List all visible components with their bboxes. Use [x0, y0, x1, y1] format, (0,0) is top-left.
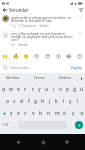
- button[interactable]: d: [18, 95, 25, 107]
- staticText: Paylaş: [71, 65, 82, 70]
- button[interactable]: s: [11, 95, 18, 107]
- staticText: ü: [80, 86, 84, 93]
- staticText: Yorumlar: [9, 7, 29, 13]
- button[interactable]: q: [0, 83, 8, 95]
- staticText: t: [32, 86, 34, 93]
- button[interactable]: Paylaş: [70, 65, 83, 70]
- staticText: ğ: [73, 86, 77, 93]
- button[interactable]: Back: [0, 6, 9, 14]
- staticText: emi_a Bunushavdi en çok kasedeni, olanla…: [11, 31, 77, 42]
- staticText: ?123: [2, 123, 9, 127]
- button[interactable]: r: [22, 83, 29, 95]
- staticText: Merhaba: [6, 76, 20, 80]
- button[interactable]: Filter: [76, 6, 85, 14]
- button[interactable]: gzdemirbk ia çalışıp apena kendi bir ve …: [0, 15, 85, 28]
- button[interactable]: Home: [37, 136, 49, 148]
- button[interactable]: w: [8, 83, 15, 95]
- button[interactable]: k: [53, 95, 60, 107]
- button[interactable]: Voice input: [78, 73, 85, 83]
- button[interactable]: ö: [61, 107, 69, 119]
- staticText: 1 g 12 beğenme Yanıtla: [11, 24, 49, 28]
- button[interactable]: Like: [78, 31, 83, 36]
- button[interactable]: h: [39, 95, 46, 107]
- staticText: s: [13, 98, 16, 105]
- staticText: l: [63, 98, 65, 105]
- staticText: 😮: [56, 54, 62, 60]
- staticText: ,: [13, 123, 15, 128]
- button[interactable]: 😂: [66, 54, 72, 60]
- button[interactable]: Back: [12, 136, 24, 148]
- staticText: u: [45, 86, 49, 93]
- button[interactable]: i: [74, 95, 81, 107]
- button[interactable]: v: [29, 107, 37, 119]
- button[interactable]: e: [15, 83, 22, 95]
- staticText: Yorum ekle...: [10, 65, 70, 70]
- button[interactable]: y: [36, 83, 43, 95]
- button[interactable]: u: [43, 83, 50, 95]
- staticText: h: [41, 98, 45, 105]
- staticText: Tamam: [34, 76, 45, 80]
- button[interactable]: 😮: [56, 54, 62, 60]
- button[interactable]: 🙌: [2, 54, 8, 60]
- button[interactable]: ğ: [71, 83, 78, 95]
- button[interactable]: 😍: [45, 54, 51, 60]
- staticText: ş: [69, 98, 72, 105]
- button[interactable]: f: [25, 95, 32, 107]
- button[interactable]: g: [32, 95, 39, 107]
- staticText: d: [20, 98, 24, 105]
- button[interactable]: Tamam: [26, 73, 52, 83]
- staticText: gzdemirbk ia çalışıp apena kendi bir ve …: [11, 15, 77, 23]
- staticText: 😊: [77, 54, 83, 60]
- button[interactable]: Recents: [61, 136, 73, 148]
- button[interactable]: 😊: [77, 54, 83, 60]
- staticText: ö: [63, 110, 67, 117]
- staticText: ı: [53, 86, 55, 93]
- staticText: m: [55, 110, 60, 117]
- button[interactable]: p: [64, 83, 71, 95]
- button[interactable]: Shift: [0, 107, 8, 119]
- staticText: e: [17, 86, 20, 93]
- button[interactable]: Backspace: [77, 107, 85, 119]
- button[interactable]: t: [29, 83, 36, 95]
- button[interactable]: c: [22, 107, 29, 119]
- button[interactable]: ,: [11, 119, 16, 131]
- staticText: b: [39, 110, 43, 117]
- button[interactable]: n: [45, 107, 53, 119]
- staticText: y: [38, 86, 41, 93]
- button[interactable]: x: [15, 107, 22, 119]
- button[interactable]: Kullanıcı: [52, 73, 78, 83]
- button[interactable]: o: [57, 83, 64, 95]
- button[interactable]: 😢: [34, 54, 40, 60]
- staticText: 🙌: [2, 54, 8, 60]
- button[interactable]: 🔥: [13, 54, 19, 60]
- button[interactable]: z: [8, 107, 15, 119]
- button[interactable]: emi_a Bunushavdi en çok kasedeni, olanla…: [0, 31, 85, 47]
- button[interactable]: l: [60, 95, 67, 107]
- staticText: g: [34, 98, 38, 105]
- staticText: n: [47, 110, 51, 117]
- staticText: j: [49, 98, 51, 105]
- staticText: ç: [72, 110, 75, 117]
- button[interactable]: a: [4, 95, 11, 107]
- button[interactable]: ?123: [0, 119, 11, 131]
- button[interactable]: Send: [75, 121, 83, 129]
- button[interactable]: b: [37, 107, 45, 119]
- staticText: f: [28, 98, 30, 105]
- button[interactable]: ü: [78, 83, 85, 95]
- button[interactable]: j: [46, 95, 53, 107]
- button[interactable]: ı: [50, 83, 57, 95]
- button[interactable]: Merhaba: [0, 73, 26, 83]
- button[interactable]: 👏: [23, 54, 29, 60]
- button[interactable]: m: [53, 107, 61, 119]
- staticText: .: [70, 123, 72, 128]
- staticText: 👏: [23, 54, 29, 60]
- staticText: 5 s Yanıtla: [11, 43, 28, 47]
- button[interactable]: ç: [69, 107, 77, 119]
- button[interactable]: ş: [67, 95, 74, 107]
- staticText: z: [10, 110, 13, 117]
- button[interactable]: Like: [78, 15, 83, 20]
- staticText: k: [55, 98, 58, 105]
- staticText: q: [2, 86, 6, 93]
